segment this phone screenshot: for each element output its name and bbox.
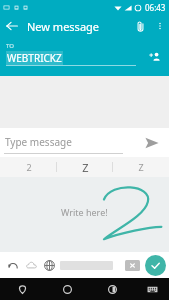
button[interactable]: Back (0, 14, 24, 38)
staticText: 06:43 (145, 2, 166, 13)
button[interactable]: Attach (129, 15, 151, 37)
button[interactable]: More options (151, 17, 169, 35)
staticText: WEBTRICKZ (7, 51, 62, 65)
button[interactable]: Keyboard (135, 278, 169, 300)
staticText: New message (27, 19, 100, 34)
button[interactable]: Back (0, 278, 45, 300)
staticText: Z (82, 160, 89, 175)
button[interactable]: Recents (90, 278, 135, 300)
button[interactable]: Z (57, 157, 113, 177)
staticText: Write here! (61, 206, 108, 218)
button[interactable]: Send (141, 132, 163, 154)
staticText: Z (138, 161, 144, 173)
button[interactable]: 2 (0, 157, 57, 177)
button[interactable]: Undo (4, 256, 22, 274)
button[interactable]: Backspace (125, 260, 140, 271)
staticText: Type message (5, 135, 72, 149)
button[interactable]: Change language (40, 256, 58, 274)
staticText: 2 (26, 161, 32, 173)
button[interactable]: Z (113, 157, 169, 177)
button[interactable]: Add recipient (144, 46, 166, 68)
staticText: TO (6, 42, 14, 50)
button[interactable]: Cloud (22, 256, 40, 274)
button[interactable]: Confirm (145, 255, 166, 276)
button[interactable]: Home (45, 278, 90, 300)
